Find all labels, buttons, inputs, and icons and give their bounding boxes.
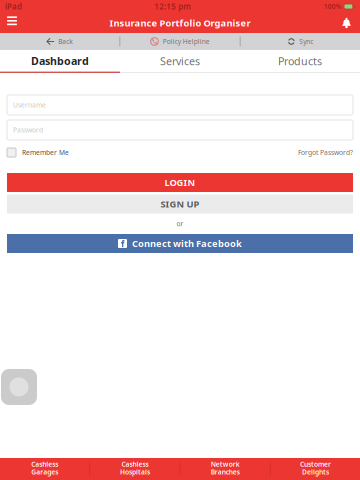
- button[interactable]: Cashless: [90, 458, 179, 480]
- button[interactable]: Products: [240, 50, 360, 73]
- staticText: Delights: [302, 467, 329, 476]
- staticText: Branches: [211, 467, 240, 476]
- staticText: Hospitals: [120, 467, 150, 476]
- staticText: iPad: [5, 1, 22, 12]
- button[interactable]: Forgot Password?: [298, 146, 353, 159]
- button[interactable]: Customer: [271, 458, 360, 480]
- staticText: 12:15 pm: [154, 1, 191, 12]
- button[interactable]: Sync: [241, 33, 360, 50]
- staticText: Garages: [31, 467, 58, 476]
- staticText: Customer: [300, 460, 331, 468]
- button[interactable]: Network: [180, 458, 270, 480]
- staticText: Services: [160, 54, 200, 68]
- staticText: Connect with Facebook: [132, 237, 242, 250]
- staticText: Cashless: [121, 460, 148, 468]
- staticText: or: [176, 219, 183, 228]
- staticText: Username: [13, 101, 46, 109]
- staticText: Cashless: [31, 460, 58, 468]
- staticText: 100%: [324, 2, 342, 11]
- staticText: LOGIN: [164, 176, 195, 189]
- staticText: SIGN UP: [160, 198, 199, 210]
- button[interactable]: Menu: [0, 13, 24, 33]
- button[interactable]: Cashless: [0, 458, 89, 480]
- staticText: Network: [211, 460, 240, 468]
- staticText: Dashboard: [31, 54, 89, 68]
- staticText: Password: [13, 126, 43, 134]
- staticText: Remember Me: [22, 148, 69, 157]
- button[interactable]: Dashboard: [0, 50, 120, 73]
- staticText: Back: [58, 37, 73, 46]
- staticText: Insurance Portfolio Organiser: [109, 17, 250, 29]
- button[interactable]: Policy Helpline: [120, 33, 240, 50]
- button[interactable]: Connect with Facebook: [7, 234, 353, 253]
- staticText: Forgot Password?: [298, 148, 353, 157]
- button[interactable]: SIGN UP: [7, 194, 353, 213]
- button[interactable]: Notifications: [333, 13, 360, 33]
- button[interactable]: Services: [120, 50, 240, 73]
- button[interactable]: Back: [0, 33, 119, 50]
- staticText: Policy Helpline: [163, 37, 210, 46]
- staticText: Sync: [299, 37, 313, 46]
- button[interactable]: Remember Me: [7, 146, 69, 159]
- staticText: Products: [278, 54, 322, 68]
- button[interactable]: LOGIN: [7, 173, 353, 192]
